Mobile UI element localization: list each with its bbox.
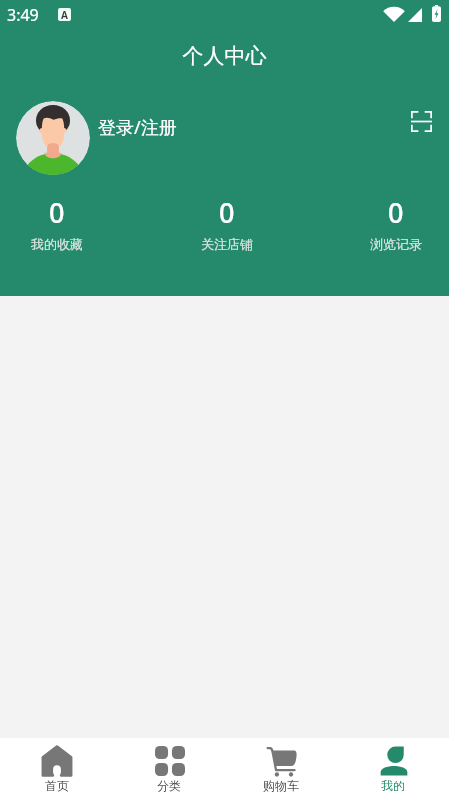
button[interactable]: 扫一扫 Scan <box>402 102 440 140</box>
staticText: A <box>61 8 68 21</box>
button[interactable]: 购物车 <box>225 738 337 800</box>
staticText: 浏览记录 <box>370 236 422 252</box>
staticText: 0 <box>388 194 404 231</box>
staticText: 分类 <box>157 778 181 793</box>
staticText: 首页 <box>45 778 69 793</box>
staticText: 登录/注册 <box>98 115 177 140</box>
staticText: 0 <box>219 194 235 231</box>
staticText: 关注店铺 <box>201 236 253 252</box>
button[interactable]: 登录/注册 <box>16 101 177 175</box>
button[interactable]: 首页 <box>0 738 113 800</box>
staticText: 个人中心 <box>0 43 449 69</box>
button[interactable]: 0 <box>31 194 83 252</box>
button[interactable]: 0 <box>370 194 422 252</box>
button[interactable]: 分类 <box>113 738 225 800</box>
button[interactable]: 我的 <box>337 738 449 800</box>
staticText: 3:49 <box>7 4 39 26</box>
staticText: 我的 <box>381 778 405 793</box>
staticText: 我的收藏 <box>31 236 83 252</box>
staticText: 0 <box>49 194 65 231</box>
staticText: 购物车 <box>263 778 299 793</box>
button[interactable]: 0 <box>201 194 253 252</box>
